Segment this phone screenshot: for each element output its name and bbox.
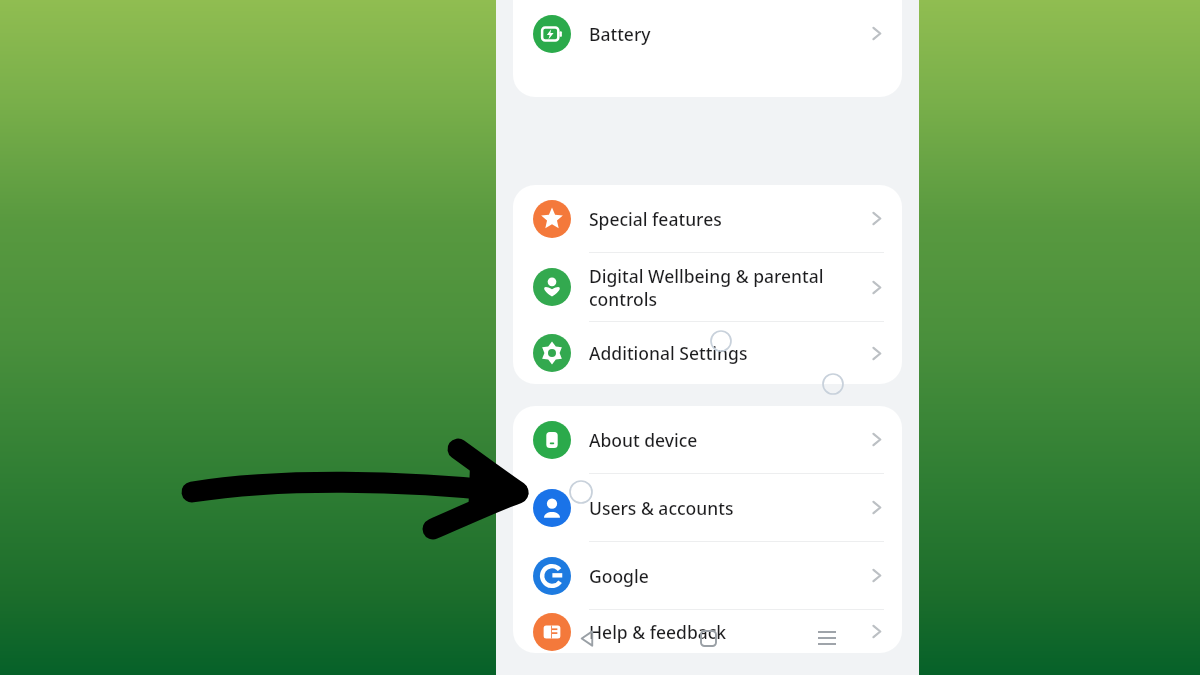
staticText: Additional Settings	[589, 341, 861, 365]
staticText: Battery	[589, 22, 861, 46]
staticText: Help & feedback	[589, 620, 861, 644]
staticText: Special features	[589, 207, 861, 231]
button[interactable]: Special features	[513, 185, 902, 252]
button[interactable]: About device	[513, 406, 902, 473]
staticText: Users & accounts	[589, 496, 861, 520]
staticText: Google	[589, 564, 861, 588]
button[interactable]: Google	[513, 542, 902, 609]
button[interactable]: Digital Wellbeing & parental controls	[513, 253, 902, 321]
button[interactable]: Additional Settings	[513, 322, 902, 384]
button[interactable]: Help & feedback	[513, 610, 902, 653]
button[interactable]: Battery	[513, 0, 902, 67]
button[interactable]: Users & accounts	[513, 474, 902, 541]
staticText: About device	[589, 428, 861, 452]
button[interactable]: Home	[686, 616, 730, 660]
button[interactable]: Back	[566, 616, 610, 660]
staticText: Digital Wellbeing & parental controls	[589, 264, 861, 311]
button[interactable]: Recent apps	[805, 616, 849, 660]
